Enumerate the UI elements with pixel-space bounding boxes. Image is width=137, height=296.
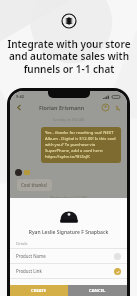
staticText: Florian Erismann	[39, 104, 85, 111]
other: Logo	[62, 14, 76, 28]
staticText: Product Name	[16, 253, 46, 259]
staticText: Tuesday at 7:02 AM	[10, 117, 127, 122]
staticText: CREATE	[31, 288, 47, 294]
button[interactable]: CREATE	[10, 285, 68, 296]
staticText: 9:42	[16, 94, 24, 99]
button[interactable]: Yes - thanks for reaching out! NEXT Albu…	[41, 127, 121, 163]
staticText: Details	[16, 241, 28, 246]
button[interactable]: Product Name	[10, 249, 127, 263]
staticText: CANCEL	[89, 288, 106, 294]
button[interactable]: Profile	[101, 103, 110, 112]
staticText: Ryan Leslie Signature F Snapback	[10, 229, 127, 236]
button[interactable]: CANCEL	[68, 285, 127, 296]
button[interactable]: Cool thanks!	[17, 179, 52, 191]
button[interactable]: Product Link	[10, 264, 127, 278]
staticText: Cool thanks!	[21, 182, 48, 188]
staticText: Product Link	[16, 268, 42, 274]
button[interactable]: Call	[113, 103, 122, 112]
button[interactable]: Back	[15, 103, 24, 112]
staticText: Yes - thanks for reaching out! NEXT Albu…	[45, 130, 117, 160]
staticText: Integrate with your store and automate s…	[7, 37, 131, 76]
staticText: Wednesday at 1:31 PM	[10, 195, 127, 198]
